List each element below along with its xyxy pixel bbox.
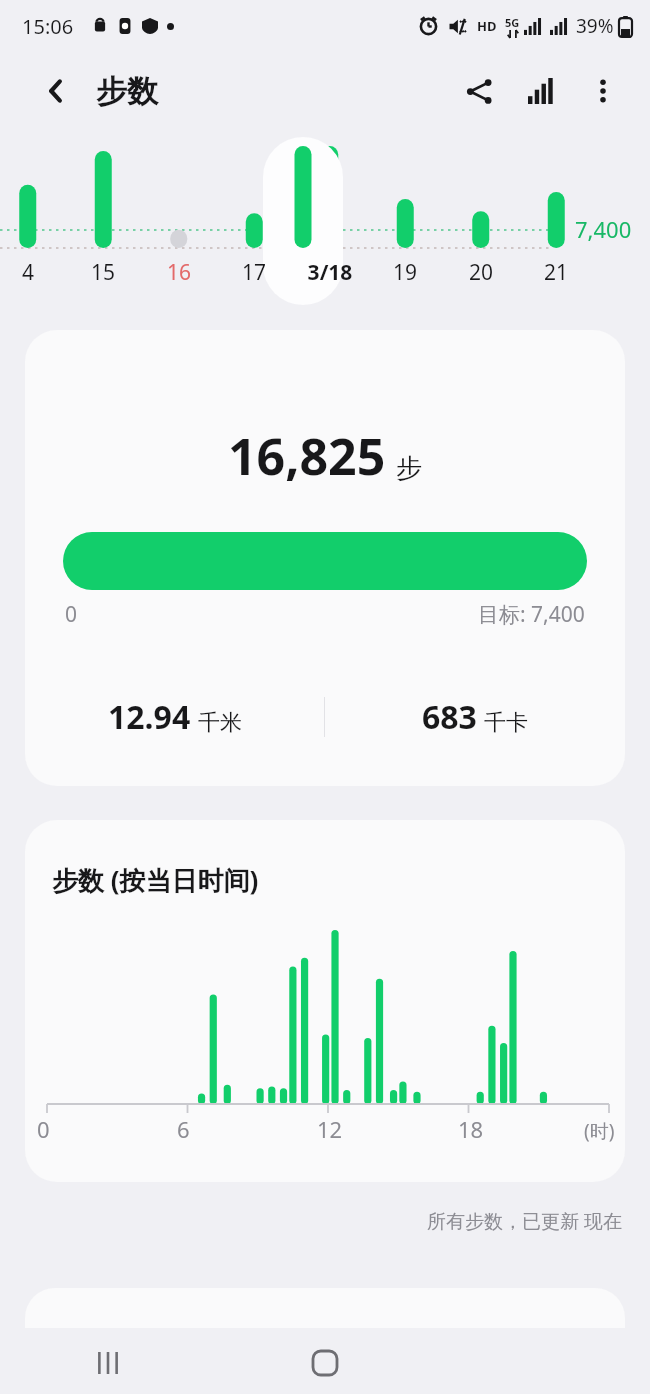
staticText: 17: [220, 258, 288, 287]
staticText: 6: [177, 1114, 190, 1144]
staticText: 4: [0, 258, 62, 287]
staticText: 19: [371, 258, 439, 287]
staticText: 15: [69, 258, 137, 287]
staticText: 39%: [576, 13, 614, 39]
staticText: 步数: [96, 72, 158, 111]
staticText: 步: [396, 452, 422, 485]
staticText: 千米: [198, 709, 242, 737]
staticText: 7,400: [575, 214, 632, 244]
button[interactable]: 16,825: [25, 330, 625, 786]
staticText: 20: [447, 258, 515, 287]
staticText: 千卡: [484, 709, 528, 737]
staticText: 0: [65, 600, 78, 629]
button[interactable]: Trends: [516, 66, 566, 116]
button[interactable]: More options: [578, 66, 628, 116]
staticText: 3/18: [296, 258, 364, 287]
staticText: 5G: [505, 15, 520, 30]
button[interactable]: Share: [454, 66, 504, 116]
button[interactable]: 步数 (按当日时间): [25, 820, 625, 1182]
staticText: 16,825: [228, 422, 386, 490]
staticText: 15:06: [22, 13, 74, 40]
button[interactable]: Recents: [0, 1332, 216, 1394]
staticText: 目标: 7,400: [478, 600, 585, 629]
button[interactable]: Back: [34, 69, 78, 113]
staticText: 12.94: [108, 695, 191, 739]
staticText: HD: [477, 17, 497, 35]
button[interactable]: [263, 137, 343, 305]
staticText: 0: [37, 1114, 50, 1144]
staticText: 21: [522, 258, 590, 287]
staticText: (时): [584, 1118, 615, 1144]
button[interactable]: Home: [216, 1332, 433, 1394]
staticText: 所有步数，已更新 现在: [427, 1208, 622, 1234]
staticText: 步数 (按当日时间): [52, 862, 259, 898]
staticText: 18: [458, 1114, 484, 1144]
staticText: 683: [422, 695, 477, 739]
staticText: 16: [145, 258, 213, 287]
staticText: 12: [317, 1114, 343, 1144]
